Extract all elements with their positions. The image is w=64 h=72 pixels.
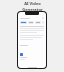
button[interactable] [35, 21, 41, 24]
button[interactable] [28, 21, 34, 24]
button[interactable] [20, 53, 44, 56]
staticText: Generator [22, 7, 43, 12]
staticText: AI Video [24, 1, 41, 6]
button[interactable] [20, 21, 27, 24]
